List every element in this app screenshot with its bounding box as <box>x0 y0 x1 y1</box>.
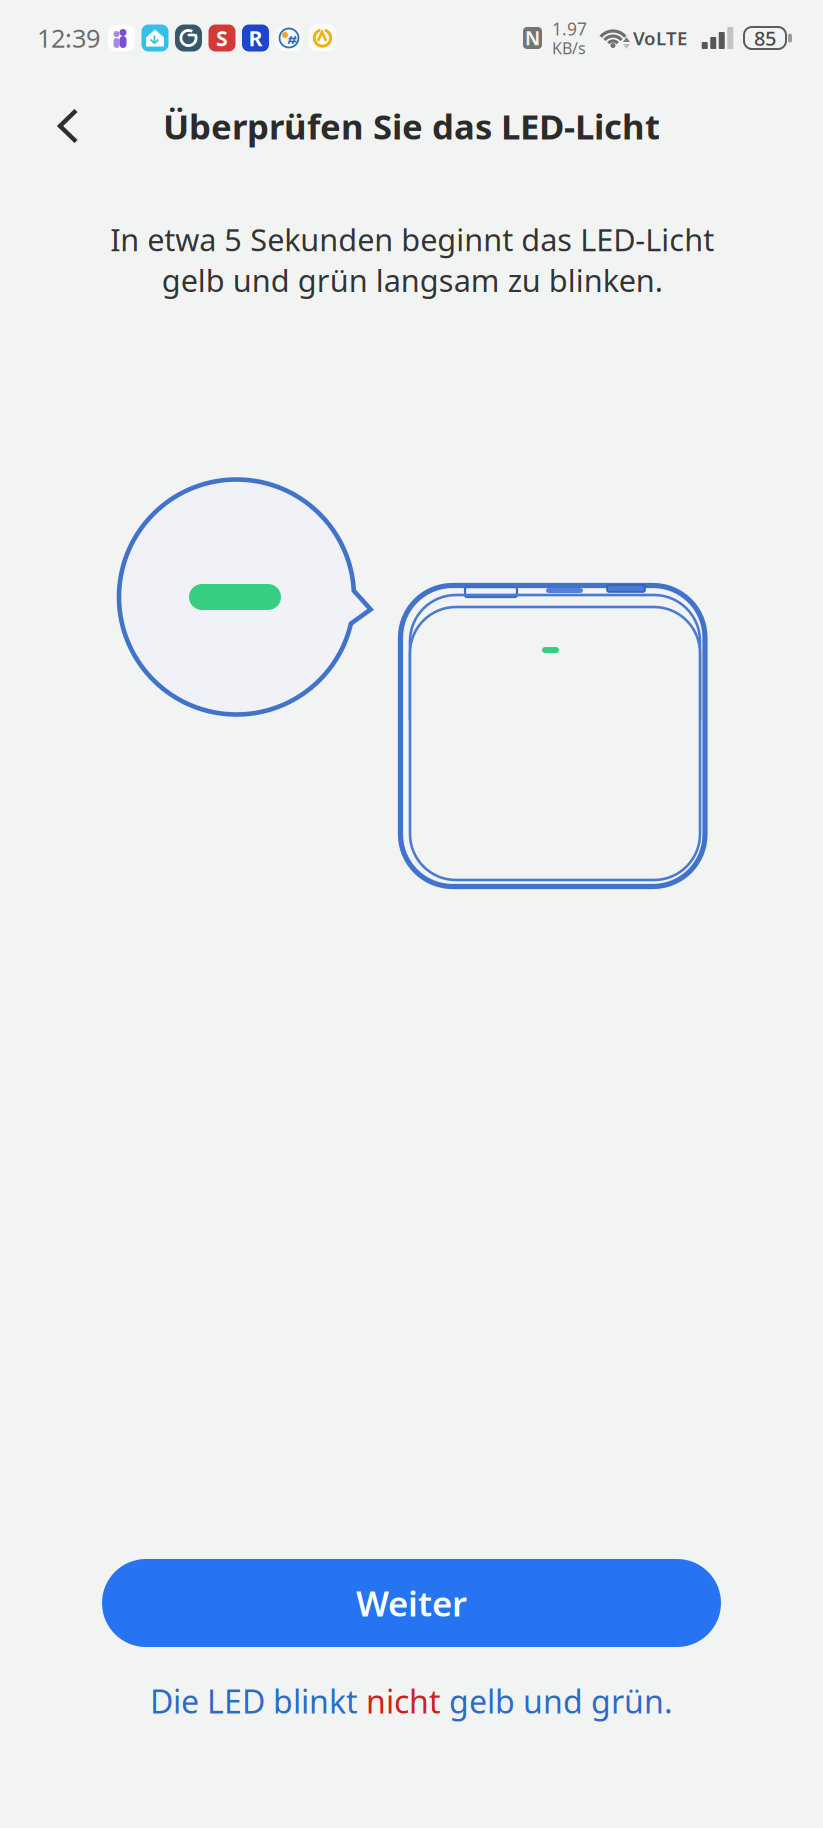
staticText: 12:39 <box>37 21 100 55</box>
staticText: KB/s <box>552 37 586 59</box>
staticText: gelb und grün. <box>441 1680 673 1722</box>
button[interactable]: Back <box>27 84 111 168</box>
button[interactable]: Weiter <box>102 1559 721 1647</box>
staticText: In etwa 5 Sekunden beginnt das LED-Licht… <box>110 219 714 300</box>
staticText: nicht <box>366 1680 441 1722</box>
staticText: S <box>216 24 228 52</box>
staticText: N <box>525 26 540 50</box>
staticText: 85 <box>754 25 776 51</box>
button[interactable]: Die LED blinkt nicht gelb und grün. <box>0 1671 823 1731</box>
staticText: Die LED blinkt <box>150 1680 366 1722</box>
staticText: R <box>248 24 262 52</box>
staticText: VoLTE <box>633 26 687 50</box>
staticText: Weiter <box>356 1580 467 1626</box>
staticText: Überprüfen Sie das LED-Licht <box>163 103 660 149</box>
staticText: 1.97 <box>552 17 587 40</box>
